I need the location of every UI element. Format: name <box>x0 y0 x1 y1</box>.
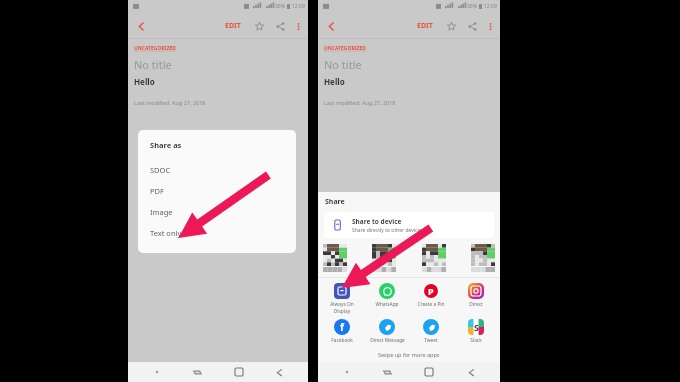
staticText: Last modified: Aug 27, 2018 <box>134 99 302 106</box>
button[interactable]: Favorite <box>443 18 459 34</box>
staticText: Share <box>325 197 345 207</box>
staticText: 30% <box>467 3 477 10</box>
staticText: No title <box>134 57 172 72</box>
staticText: Last modified: Aug 27, 2018 <box>324 99 494 106</box>
staticText: Direct Message <box>370 337 405 344</box>
button[interactable]: EDIT <box>222 21 244 31</box>
button[interactable]: Home <box>218 362 259 382</box>
button[interactable]: f <box>321 318 363 345</box>
staticText: 12:09 <box>292 3 305 10</box>
button[interactable]: Show keyboard <box>326 362 367 382</box>
staticText: 30% <box>275 3 285 10</box>
button[interactable]: Direct <box>455 282 497 309</box>
staticText: Hello <box>324 76 345 87</box>
button[interactable]: Back <box>450 362 492 382</box>
staticText: Facebook <box>331 337 353 344</box>
staticText: Create a Pin <box>417 301 445 308</box>
button[interactable]: S <box>455 318 497 345</box>
staticText: WhatsApp <box>375 301 399 308</box>
button[interactable]: Image <box>150 201 296 222</box>
staticText: P <box>428 285 434 297</box>
staticText: S <box>474 321 479 333</box>
button[interactable]: SDOC <box>150 159 296 180</box>
button[interactable]: Back <box>322 17 340 35</box>
staticText: SDOC <box>150 165 171 175</box>
staticText: Share directly to other devices. <box>352 227 425 234</box>
button[interactable]: WhatsApp <box>366 282 408 309</box>
staticText: EDIT <box>225 21 241 31</box>
button[interactable]: Recents <box>177 362 218 382</box>
button[interactable]: Show keyboard <box>136 362 177 382</box>
staticText: EDIT <box>417 21 433 31</box>
staticText: Image <box>150 207 173 217</box>
button[interactable]: Favorite <box>251 18 267 34</box>
staticText: UNCATEGORIZED <box>324 45 367 52</box>
staticText: Text only <box>150 228 182 238</box>
staticText: No title <box>324 57 362 72</box>
button[interactable]: Home <box>408 362 450 382</box>
button[interactable]: EDIT <box>414 21 436 31</box>
staticText: Slack <box>470 337 482 344</box>
staticText: 12:09 <box>484 3 497 10</box>
button[interactable]: Share <box>464 18 480 34</box>
button[interactable]: Back <box>132 17 150 35</box>
button[interactable]: Share to device <box>324 212 494 238</box>
staticText: Tweet <box>424 337 438 344</box>
button[interactable]: Text only <box>150 222 296 243</box>
button[interactable]: Tweet <box>410 318 452 345</box>
button[interactable]: Share <box>272 18 288 34</box>
staticText: UNCATEGORIZED <box>134 45 177 52</box>
staticText: Share to device <box>352 217 402 226</box>
button[interactable]: Always On Display <box>321 282 363 316</box>
button[interactable]: Swipe up for more apps <box>318 348 500 360</box>
staticText: Direct <box>469 301 483 308</box>
staticText: Hello <box>134 76 155 87</box>
button[interactable]: Recents <box>367 362 408 382</box>
staticText: Share as <box>150 140 182 150</box>
button[interactable]: More options <box>291 19 305 33</box>
staticText: Always On Display <box>330 301 354 315</box>
staticText: Swipe up for more apps <box>378 351 440 358</box>
button[interactable]: Direct Message <box>366 318 408 345</box>
button[interactable]: PDF <box>150 180 296 201</box>
staticText: f <box>340 320 344 334</box>
button[interactable]: Back <box>259 362 300 382</box>
button[interactable]: P <box>410 282 452 309</box>
button[interactable]: More options <box>483 19 497 33</box>
staticText: PDF <box>150 186 164 196</box>
